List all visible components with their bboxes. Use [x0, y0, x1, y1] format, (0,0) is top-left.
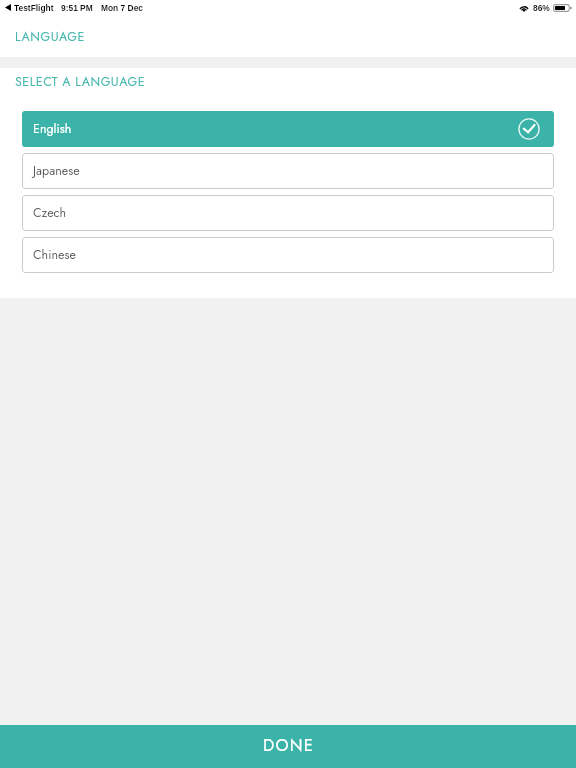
button[interactable]: DONE: [0, 725, 576, 768]
staticText: Japanese: [33, 162, 80, 180]
staticText: Czech: [33, 204, 67, 222]
staticText: 9:51 PM: [61, 3, 93, 12]
staticText: SELECT A LANGUAGE: [15, 73, 146, 91]
staticText: Chinese: [33, 246, 76, 264]
staticText: Mon 7 Dec: [101, 3, 143, 12]
other: Selected: [518, 118, 540, 140]
button[interactable]: Czech: [22, 195, 554, 231]
staticText: English: [33, 120, 72, 138]
staticText: DONE: [263, 733, 315, 757]
staticText: 86%: [533, 3, 550, 12]
button[interactable]: Chinese: [22, 237, 554, 273]
staticText: TestFlight: [14, 3, 54, 12]
staticText: LANGUAGE: [15, 28, 85, 46]
button[interactable]: English: [22, 111, 554, 147]
button[interactable]: Japanese: [22, 153, 554, 189]
